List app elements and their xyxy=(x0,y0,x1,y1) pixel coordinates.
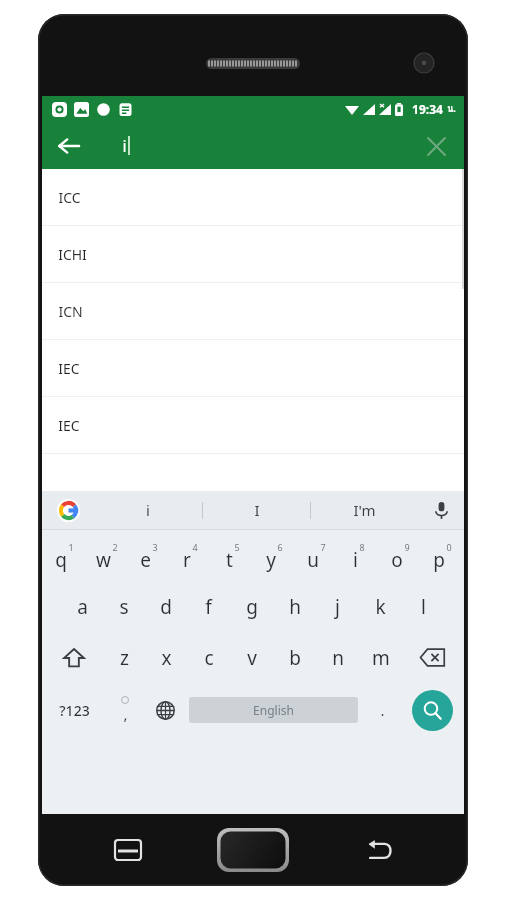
button[interactable]: Shift xyxy=(44,632,103,683)
staticText: English xyxy=(253,702,294,718)
staticText: m xyxy=(372,645,390,671)
button[interactable]: ICN xyxy=(42,283,464,339)
button[interactable]: ICHI xyxy=(42,226,464,282)
staticText: IEC xyxy=(58,416,80,435)
staticText: 4 xyxy=(192,541,198,553)
button[interactable]: o xyxy=(379,530,421,581)
staticText: x xyxy=(161,645,172,671)
staticText: 9 xyxy=(404,541,410,553)
button[interactable]: g xyxy=(230,581,273,632)
button[interactable]: Recent apps xyxy=(105,827,151,873)
staticText: y xyxy=(266,547,276,573)
button[interactable]: i xyxy=(94,491,202,529)
staticText: i xyxy=(122,135,127,157)
staticText: s xyxy=(119,594,129,620)
button[interactable]: IEC xyxy=(42,340,464,396)
button[interactable]: a xyxy=(61,581,103,632)
button[interactable]: i xyxy=(122,122,130,169)
staticText: I xyxy=(254,500,260,520)
button[interactable]: d xyxy=(145,581,187,632)
button[interactable]: r xyxy=(169,530,211,581)
staticText: ICHI xyxy=(58,245,87,264)
staticText: IEC xyxy=(58,359,80,378)
staticText: 5 xyxy=(234,541,240,553)
staticText: t xyxy=(226,547,233,573)
staticText: u xyxy=(307,547,319,573)
staticText: น. xyxy=(447,102,456,116)
staticText: 0 xyxy=(446,541,452,553)
button[interactable]: q xyxy=(43,530,85,581)
button[interactable]: . xyxy=(362,683,402,737)
button[interactable]: Back xyxy=(48,125,90,167)
staticText: d xyxy=(160,594,172,620)
staticText: 2 xyxy=(112,541,118,553)
button[interactable]: k xyxy=(359,581,402,632)
staticText: g xyxy=(246,594,258,620)
button[interactable]: b xyxy=(273,632,316,683)
button[interactable]: Change keyboard language xyxy=(145,683,185,737)
staticText: q xyxy=(55,547,67,573)
staticText: 6 xyxy=(277,541,283,553)
staticText: 8 xyxy=(359,541,365,553)
button[interactable]: Voice input xyxy=(418,491,464,529)
button[interactable]: x xyxy=(145,632,187,683)
button[interactable]: Google xyxy=(42,491,94,529)
staticText: b xyxy=(289,645,301,671)
staticText: i xyxy=(353,547,358,573)
staticText: , xyxy=(123,704,128,724)
staticText: l xyxy=(421,594,426,620)
button[interactable]: Backspace xyxy=(402,632,462,683)
button[interactable]: h xyxy=(273,581,316,632)
staticText: . xyxy=(380,700,385,720)
button[interactable]: Search xyxy=(412,690,453,731)
button[interactable]: v xyxy=(230,632,273,683)
button[interactable]: u xyxy=(295,530,337,581)
button[interactable]: f xyxy=(187,581,230,632)
staticText: f xyxy=(205,594,212,620)
button[interactable]: IEC xyxy=(42,397,464,453)
button[interactable]: n xyxy=(316,632,359,683)
button[interactable]: y xyxy=(253,530,295,581)
staticText: v xyxy=(247,645,257,671)
button[interactable]: p xyxy=(421,530,463,581)
staticText: i xyxy=(146,500,150,520)
staticText: e xyxy=(140,547,151,573)
staticText: 7 xyxy=(320,541,326,553)
staticText: a xyxy=(77,594,88,620)
button[interactable]: l xyxy=(402,581,445,632)
button[interactable]: ICC xyxy=(42,169,464,225)
button[interactable]: Comma and emoji xyxy=(105,683,145,737)
button[interactable]: i xyxy=(337,530,379,581)
button[interactable]: Back xyxy=(356,827,402,873)
button[interactable]: m xyxy=(359,632,402,683)
staticText: 3 xyxy=(152,541,158,553)
staticText: j xyxy=(335,594,340,620)
staticText: ?123 xyxy=(59,701,90,720)
staticText: n xyxy=(332,645,344,671)
staticText: k xyxy=(375,594,386,620)
staticText: p xyxy=(433,547,445,573)
staticText: 19:34 xyxy=(412,101,443,117)
staticText: z xyxy=(120,645,129,671)
button[interactable]: English xyxy=(189,697,358,723)
button[interactable]: s xyxy=(103,581,145,632)
button[interactable]: w xyxy=(85,530,127,581)
staticText: o xyxy=(391,547,403,573)
staticText: h xyxy=(289,594,301,620)
button[interactable]: c xyxy=(187,632,230,683)
button[interactable]: e xyxy=(127,530,169,581)
staticText: w xyxy=(96,547,111,573)
staticText: 1 xyxy=(68,541,74,553)
button[interactable]: t xyxy=(211,530,253,581)
staticText: ICN xyxy=(58,302,83,321)
staticText: r xyxy=(183,547,191,573)
staticText: c xyxy=(204,645,214,671)
button[interactable]: Home xyxy=(217,828,289,872)
button[interactable]: I xyxy=(203,491,310,529)
button[interactable]: j xyxy=(316,581,359,632)
button[interactable]: ?123 xyxy=(44,683,105,737)
button[interactable]: Clear search xyxy=(416,126,456,166)
staticText: I'm xyxy=(353,500,376,520)
button[interactable]: I'm xyxy=(311,491,418,529)
button[interactable]: z xyxy=(103,632,145,683)
